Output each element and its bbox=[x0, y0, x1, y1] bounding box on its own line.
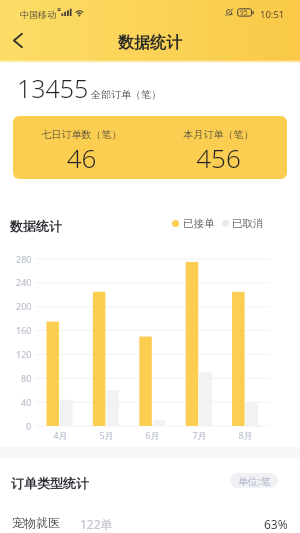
staticText: 本月订单（笔） bbox=[150, 128, 287, 141]
button[interactable]: 七日订单数（笔） bbox=[13, 116, 150, 179]
staticText: 全部订单（笔） bbox=[91, 88, 161, 101]
staticText: 6月 bbox=[145, 429, 160, 441]
staticText: 数据统计 bbox=[0, 33, 300, 53]
staticText: 95 bbox=[240, 8, 248, 17]
button[interactable]: 已取消 bbox=[219, 216, 263, 231]
staticText: 40 bbox=[21, 396, 32, 408]
staticText: 已取消 bbox=[232, 217, 264, 230]
staticText: 456 bbox=[150, 140, 287, 175]
button[interactable]: Back bbox=[3, 26, 32, 55]
staticText: 63% bbox=[264, 516, 288, 532]
staticText: 已接单 bbox=[183, 217, 215, 230]
staticText: 4月 bbox=[53, 429, 68, 441]
staticText: 8月 bbox=[238, 429, 253, 441]
staticText: 122单 bbox=[80, 516, 113, 532]
staticText: 宠物就医 bbox=[12, 515, 60, 530]
staticText: 240 bbox=[16, 276, 32, 288]
button[interactable]: 单位:笔 bbox=[230, 473, 278, 488]
staticText: 数据统计 bbox=[10, 218, 62, 234]
staticText: 13455 bbox=[17, 71, 89, 105]
staticText: 单位:笔 bbox=[238, 474, 271, 488]
button[interactable]: 宠物就医 bbox=[0, 502, 300, 533]
staticText: 10:51 bbox=[260, 8, 285, 21]
staticText: 5月 bbox=[99, 429, 114, 441]
button[interactable]: 本月订单（笔） bbox=[150, 116, 287, 179]
staticText: 中国移动 bbox=[20, 9, 56, 20]
staticText: 160 bbox=[16, 324, 32, 336]
staticText: 120 bbox=[16, 348, 32, 360]
staticText: 200 bbox=[16, 300, 32, 312]
staticText: 46 bbox=[13, 140, 150, 175]
button[interactable]: 已接单 bbox=[169, 216, 214, 231]
staticText: 0 bbox=[26, 420, 32, 432]
staticText: 80 bbox=[21, 372, 32, 384]
staticText: 280 bbox=[16, 253, 32, 265]
staticText: 7月 bbox=[192, 429, 207, 441]
staticText: 七日订单数（笔） bbox=[13, 128, 150, 141]
staticText: 订单类型统计 bbox=[11, 475, 89, 491]
